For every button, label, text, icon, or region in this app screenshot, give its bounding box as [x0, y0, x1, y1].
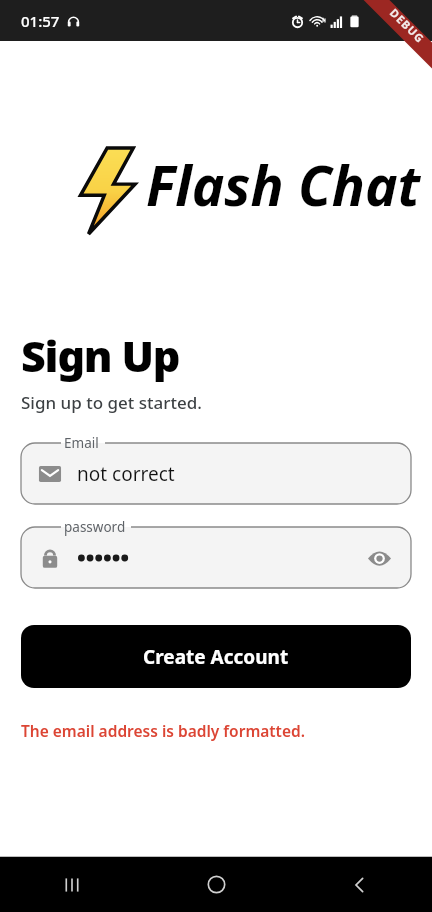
button[interactable]: Show password	[364, 543, 394, 573]
staticText: Sign Up	[21, 326, 180, 385]
staticText: Flash Chat	[146, 147, 421, 222]
staticText: Email	[64, 434, 99, 452]
button[interactable]: Create Account	[21, 625, 411, 688]
staticText: 01:57	[21, 11, 60, 31]
staticText: not correct	[77, 461, 175, 487]
button[interactable]: password	[21, 518, 411, 588]
button[interactable]: Home	[144, 857, 288, 912]
button[interactable]: Recent apps	[0, 857, 144, 912]
button[interactable]: Email	[21, 434, 411, 504]
staticText: DEBUG	[387, 5, 428, 46]
button[interactable]: Back	[288, 857, 432, 912]
staticText: The email address is badly formatted.	[21, 720, 305, 741]
staticText: Sign up to get started.	[21, 391, 202, 414]
staticText: Create Account	[143, 644, 289, 670]
staticText: password	[64, 518, 126, 536]
